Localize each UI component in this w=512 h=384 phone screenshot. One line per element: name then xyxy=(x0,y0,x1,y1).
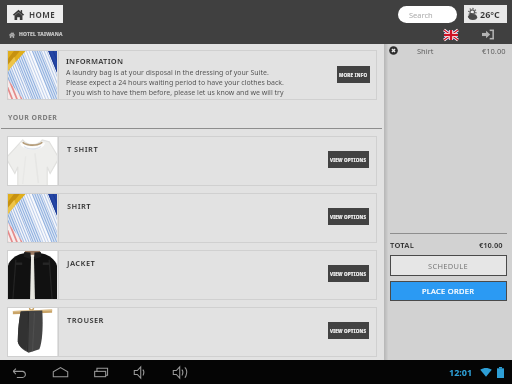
button[interactable]: Volume down xyxy=(132,363,151,382)
staticText: Shirt xyxy=(417,46,434,56)
button[interactable]: SHIRT xyxy=(7,193,377,243)
staticText: SCHEDULE xyxy=(428,261,469,271)
button[interactable]: VIEW OPTIONS xyxy=(328,208,369,225)
staticText: YOUR ORDER xyxy=(8,113,58,123)
button[interactable]: T SHIRT xyxy=(7,136,377,186)
button[interactable]: VIEW OPTIONS xyxy=(328,322,369,339)
staticText: INFORMATION xyxy=(66,56,124,66)
button[interactable]: Log out xyxy=(482,29,494,40)
staticText: VIEW OPTIONS xyxy=(330,328,367,334)
button[interactable]: Search xyxy=(398,6,457,23)
button[interactable]: Back xyxy=(10,363,29,382)
button[interactable]: PLACE ORDER xyxy=(390,281,507,301)
button[interactable]: Remove Shirt xyxy=(384,44,512,57)
button[interactable]: Volume up xyxy=(171,363,190,382)
button[interactable]: Remove Shirt xyxy=(389,46,398,55)
button[interactable]: VIEW OPTIONS xyxy=(328,151,369,168)
button[interactable]: MORE INFO xyxy=(337,66,370,83)
staticText: €10.00 xyxy=(479,240,503,250)
staticText: If you wish to have them before, please … xyxy=(66,88,284,98)
button[interactable]: TROUSER xyxy=(7,307,377,357)
staticText: TOTAL xyxy=(390,240,415,250)
staticText: Please expect a 24 hours waiting period … xyxy=(66,78,284,88)
staticText: VIEW OPTIONS xyxy=(330,157,367,163)
button[interactable]: Home xyxy=(51,363,70,382)
button[interactable]: Language: English xyxy=(444,30,458,40)
staticText: MORE INFO xyxy=(339,72,368,78)
staticText: VIEW OPTIONS xyxy=(330,214,367,220)
staticText: 26°C xyxy=(480,8,500,20)
staticText: JACKET xyxy=(67,258,328,268)
staticText: TROUSER xyxy=(67,315,328,325)
staticText: T SHIRT xyxy=(67,144,328,154)
staticText: VIEW OPTIONS xyxy=(330,271,367,277)
staticText: Search xyxy=(409,10,433,20)
button[interactable]: Recent apps xyxy=(92,363,111,382)
button[interactable]: JACKET xyxy=(7,250,377,300)
staticText: A laundry bag is at your disposal in the… xyxy=(66,68,269,78)
staticText: SHIRT xyxy=(67,201,328,211)
button[interactable]: INFORMATION xyxy=(7,50,377,100)
staticText: HOTEL TAIWANA xyxy=(19,31,63,38)
staticText: PLACE ORDER xyxy=(422,286,475,296)
button[interactable]: HOME xyxy=(7,5,63,23)
button[interactable]: 26°C xyxy=(464,5,507,23)
staticText: 12:01 xyxy=(449,366,473,378)
button[interactable]: VIEW OPTIONS xyxy=(328,265,369,282)
staticText: €10.00 xyxy=(482,46,506,56)
staticText: HOME xyxy=(29,9,56,20)
button[interactable]: SCHEDULE xyxy=(390,255,507,276)
